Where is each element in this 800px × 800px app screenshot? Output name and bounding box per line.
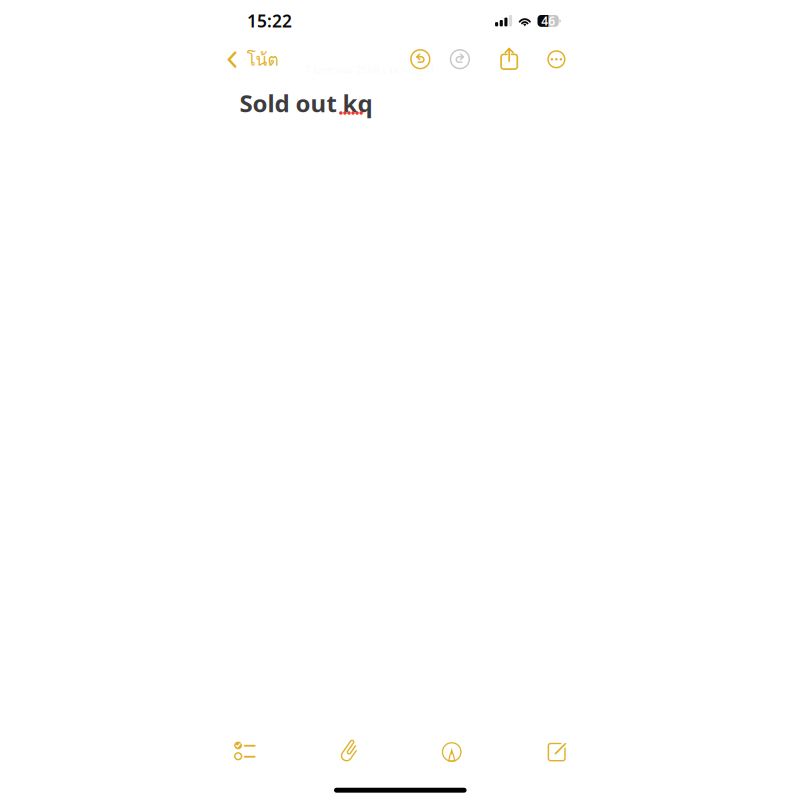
button[interactable]: Markup [430,730,474,774]
staticText: 7 มกราคม 2568 เวลา 09:41 [304,62,435,78]
button[interactable]: โน้ต [221,39,285,80]
staticText: โน้ต [247,46,279,73]
button[interactable]: New note [535,730,579,774]
button[interactable]: Share [495,42,524,76]
button[interactable]: More options [541,44,571,74]
button[interactable]: Attach file [329,727,370,772]
staticText: 15:22 [247,9,292,32]
staticText: 46 [541,13,555,29]
button[interactable]: Undo [404,43,436,75]
button[interactable]: Checklist [222,729,268,773]
button[interactable]: Redo [444,43,476,75]
staticText: Sold out kq [239,87,372,119]
